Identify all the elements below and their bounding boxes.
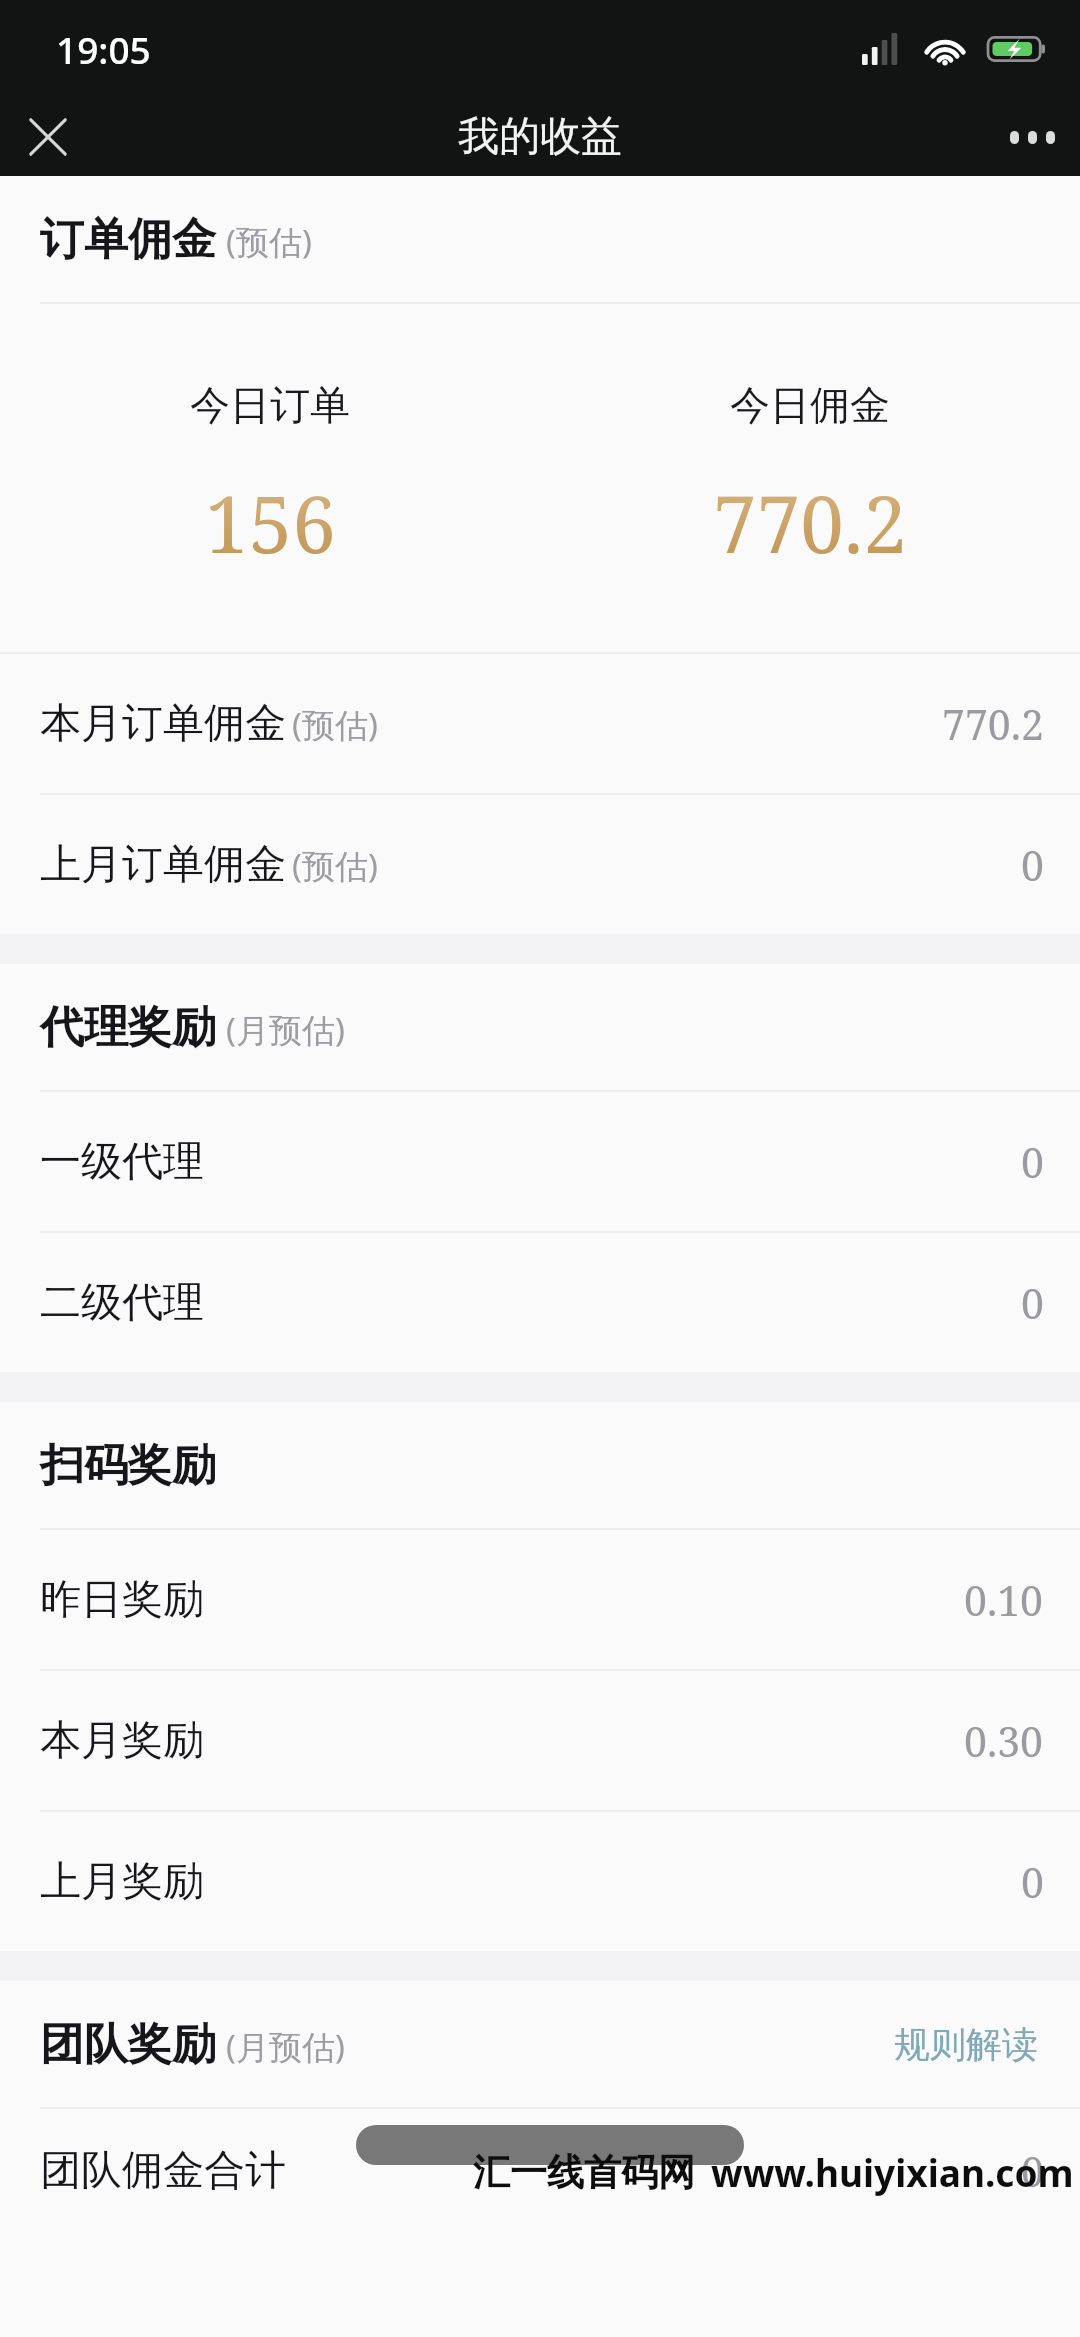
staticText: 156 — [205, 470, 336, 576]
staticText: 一级代理 — [40, 1136, 204, 1188]
staticText: 770.2 — [942, 696, 1044, 752]
button[interactable]: 本月奖励 — [0, 1671, 1080, 1810]
staticText: 本月订单佣金 — [40, 698, 286, 750]
staticText: 汇一线首码网 — [473, 2149, 695, 2196]
staticText: www.huiyixian.com — [711, 2147, 1074, 2197]
button[interactable]: 上月订单佣金 — [0, 795, 1080, 934]
staticText: (预估) — [292, 843, 378, 888]
staticText: 本月奖励 — [40, 1715, 204, 1767]
button[interactable]: 上月奖励 — [0, 1812, 1080, 1951]
staticText: 0.10 — [964, 1572, 1044, 1628]
staticText: 上月奖励 — [40, 1856, 204, 1908]
button[interactable]: 昨日奖励 — [0, 1530, 1080, 1669]
staticText: 0 — [1021, 837, 1044, 893]
staticText: 今日订单 — [190, 380, 350, 430]
staticText: (月预估) — [226, 2024, 345, 2069]
button[interactable]: 一级代理 — [0, 1092, 1080, 1231]
staticText: 0 — [1021, 1134, 1044, 1190]
staticText: (月预估) — [226, 1007, 345, 1052]
staticText: 扫码奖励 — [40, 1438, 216, 1493]
staticText: 0 — [1021, 2143, 1044, 2199]
button[interactable]: 本月订单佣金 — [0, 654, 1080, 793]
staticText: 上月订单佣金 — [40, 839, 286, 891]
button[interactable]: 规则解读 — [888, 2010, 1044, 2079]
staticText: 代理奖励 — [40, 1000, 216, 1055]
button[interactable]: More options — [984, 98, 1080, 176]
staticText: (预估) — [226, 219, 312, 264]
staticText: 团队奖励 — [40, 2017, 216, 2072]
button[interactable]: 今日订单 — [0, 380, 540, 576]
staticText: 今日佣金 — [730, 380, 890, 430]
staticText: 我的收益 — [458, 111, 622, 163]
staticText: 昨日奖励 — [40, 1574, 204, 1626]
button[interactable]: 团队佣金合计 — [0, 2109, 1080, 2201]
staticText: 0.30 — [964, 1713, 1044, 1769]
staticText: 二级代理 — [40, 1277, 204, 1329]
button[interactable]: Close — [0, 98, 96, 176]
button[interactable]: 二级代理 — [0, 1233, 1080, 1372]
staticText: 0 — [1021, 1854, 1044, 1910]
staticText: 0 — [1021, 1275, 1044, 1331]
staticText: 770.2 — [713, 470, 907, 576]
staticText: 订单佣金 — [40, 212, 216, 267]
button[interactable]: 今日佣金 — [540, 380, 1080, 576]
staticText: 团队佣金合计 — [40, 2145, 286, 2197]
staticText: 规则解读 — [894, 2022, 1038, 2067]
staticText: (预估) — [292, 702, 378, 747]
staticText: 19:05 — [56, 24, 151, 74]
